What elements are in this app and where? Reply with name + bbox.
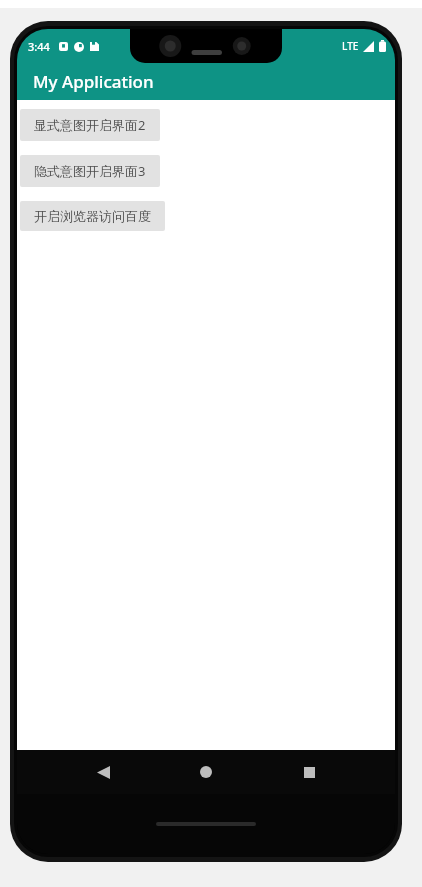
staticText: My Application bbox=[33, 70, 154, 93]
staticText: 开启浏览器访问百度 bbox=[34, 208, 151, 224]
staticText: 3:44 bbox=[28, 39, 50, 54]
button[interactable]: 开启浏览器访问百度 bbox=[20, 201, 165, 231]
staticText: 隐式意图开启界面3 bbox=[34, 162, 146, 180]
button[interactable]: Home bbox=[188, 754, 224, 790]
staticText: LTE bbox=[342, 39, 359, 53]
button[interactable]: Back bbox=[85, 754, 121, 790]
button[interactable]: 隐式意图开启界面3 bbox=[20, 155, 160, 187]
button[interactable]: 显式意图开启界面2 bbox=[20, 109, 160, 141]
staticText: 显式意图开启界面2 bbox=[34, 116, 146, 134]
button[interactable]: Recents bbox=[291, 754, 327, 790]
